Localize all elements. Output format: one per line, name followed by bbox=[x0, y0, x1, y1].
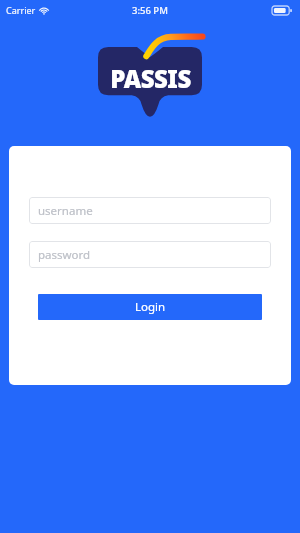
staticText: 3:56 PM bbox=[132, 4, 168, 17]
button[interactable]: Login bbox=[38, 294, 262, 320]
staticText: password bbox=[38, 247, 91, 263]
staticText: Carrier bbox=[6, 4, 36, 16]
staticText: Login bbox=[135, 299, 166, 315]
staticText: PASSIS bbox=[110, 62, 191, 95]
button[interactable]: username bbox=[29, 197, 271, 224]
staticText: username bbox=[38, 203, 93, 219]
button[interactable]: password bbox=[29, 241, 271, 268]
